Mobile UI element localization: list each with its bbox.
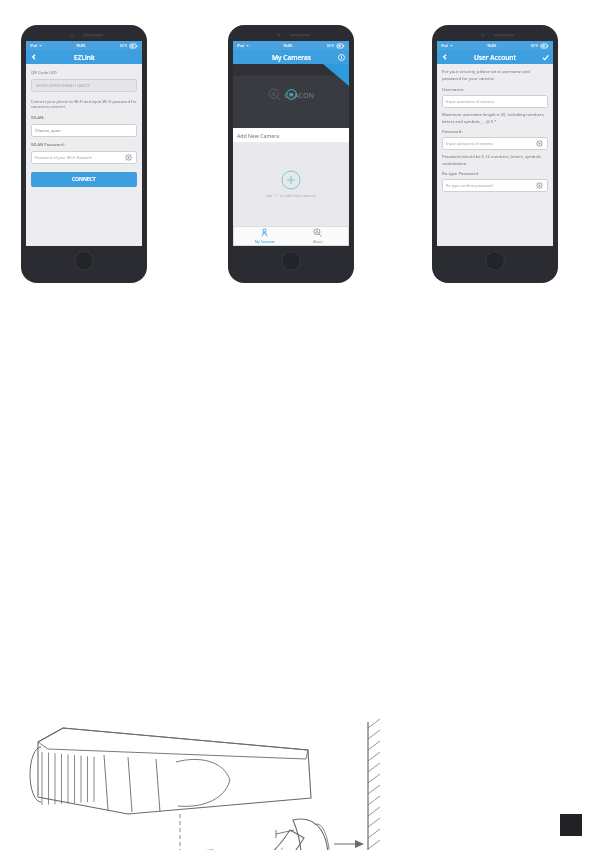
staticText: 65 % bbox=[120, 44, 128, 48]
staticText: Re-type Password bbox=[442, 170, 478, 176]
staticText: Password should be 6-12 numbers, letters… bbox=[442, 154, 548, 166]
button[interactable]: Re-type confirm password bbox=[442, 179, 548, 192]
staticText: WLAN Password : bbox=[31, 142, 66, 148]
staticText: tap "+" to add new camera bbox=[266, 193, 316, 198]
staticText: 65 % bbox=[327, 44, 335, 48]
button[interactable]: CONNECT bbox=[31, 172, 137, 187]
button[interactable]: Chacon_open bbox=[31, 124, 137, 137]
staticText: Connect your phone to Wi-Fi and input Wi… bbox=[31, 99, 137, 110]
button[interactable]: Password of your Wi-Fi Network bbox=[31, 151, 137, 164]
button[interactable]: My Cameras bbox=[242, 226, 287, 246]
staticText: EZLink bbox=[74, 53, 95, 62]
button[interactable]: Confirm bbox=[539, 51, 551, 63]
staticText: Password: bbox=[442, 128, 463, 134]
staticText: "AFHSEU6I8KB12BWA111AAZZZ bbox=[35, 83, 90, 88]
staticText: 16:05 bbox=[487, 43, 497, 48]
staticText: WLAN: bbox=[31, 115, 45, 121]
staticText: For your security, please set a username… bbox=[442, 69, 548, 81]
staticText: iPad bbox=[237, 43, 244, 48]
button[interactable]: Show password bbox=[535, 139, 544, 148]
button[interactable]: Add new camera bbox=[281, 170, 301, 190]
button[interactable]: Add New Camera bbox=[233, 128, 349, 142]
staticText: CHACON bbox=[284, 90, 315, 100]
button[interactable]: "AFHSEU6I8KB12BWA111AAZZZ bbox=[31, 79, 137, 92]
staticText: User Account bbox=[474, 53, 516, 62]
button[interactable]: Show password bbox=[124, 153, 133, 162]
staticText: Add New Camera bbox=[237, 132, 280, 139]
staticText: About bbox=[313, 239, 323, 244]
staticText: iPad bbox=[30, 43, 37, 48]
staticText: My Cameras bbox=[255, 239, 275, 244]
staticText: iPad bbox=[441, 43, 448, 48]
staticText: Username: bbox=[442, 86, 465, 92]
button[interactable]: Input password of camera bbox=[442, 137, 548, 150]
button[interactable]: Show password bbox=[535, 181, 544, 190]
staticText: Input password of camera bbox=[446, 141, 493, 146]
button[interactable]: About bbox=[295, 226, 340, 246]
staticText: QR Code UID bbox=[31, 70, 57, 76]
button[interactable]: Back bbox=[28, 51, 40, 63]
staticText: CONNECT bbox=[72, 176, 96, 183]
staticText: Chacon_open bbox=[35, 128, 61, 133]
staticText: 16:05 bbox=[283, 43, 293, 48]
staticText: Input username of camera bbox=[446, 99, 494, 104]
staticText: My Cameras bbox=[272, 53, 311, 62]
staticText: 65 % bbox=[531, 44, 539, 48]
staticText: 16:05 bbox=[76, 43, 86, 48]
staticText: Password of your Wi-Fi Network bbox=[35, 155, 92, 160]
button[interactable]: Input username of camera bbox=[442, 95, 548, 108]
staticText: Re-type confirm password bbox=[446, 183, 493, 188]
staticText: Maximum username length is 20, including… bbox=[442, 112, 548, 124]
button[interactable]: Back bbox=[439, 51, 451, 63]
button[interactable]: Info bbox=[336, 52, 346, 62]
